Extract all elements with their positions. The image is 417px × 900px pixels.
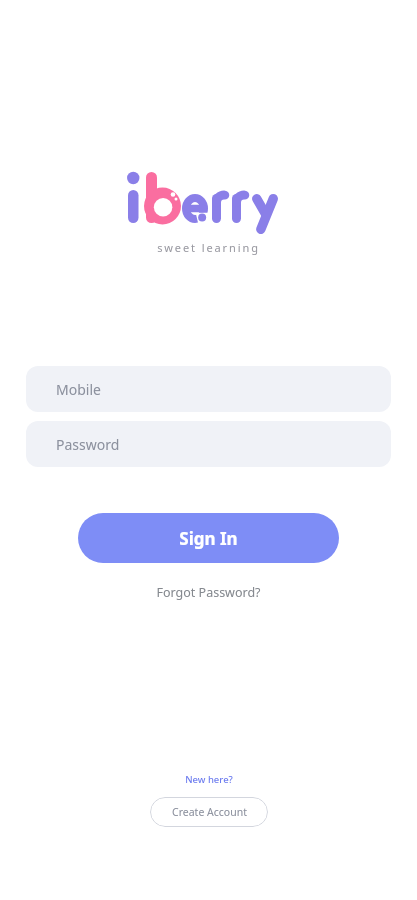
button[interactable]: Mobile	[26, 366, 391, 412]
button[interactable]: New here?	[179, 771, 239, 788]
staticText: Forgot Password?	[156, 584, 261, 601]
staticText: sweet learning	[157, 240, 260, 255]
button[interactable]: Forgot Password?	[148, 580, 269, 605]
staticText: New here?	[185, 773, 233, 786]
button[interactable]: Create Account	[150, 797, 268, 827]
staticText: Mobile	[56, 380, 101, 399]
button[interactable]: Sign In	[78, 513, 339, 563]
staticText: Sign In	[179, 527, 238, 550]
button[interactable]: Password	[26, 421, 391, 467]
staticText: Create Account	[172, 805, 247, 819]
staticText: Password	[56, 435, 120, 454]
